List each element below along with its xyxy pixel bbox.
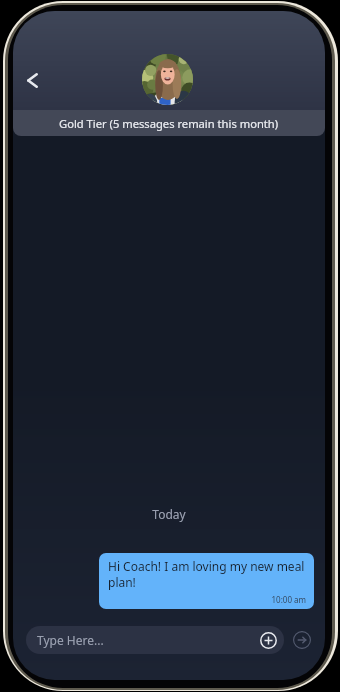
staticText: Type Here... <box>37 632 104 648</box>
staticText: Today <box>13 506 325 522</box>
staticText: Gold Tier (5 messages remain this month) <box>59 116 279 131</box>
button[interactable]: Gold Tier (5 messages remain this month) <box>13 110 325 136</box>
button[interactable]: Back <box>13 61 51 99</box>
button[interactable]: Coach profile photo <box>142 54 193 105</box>
staticText: Hi Coach! I am loving my new meal plan! <box>108 558 305 590</box>
button[interactable]: Add attachment <box>260 632 277 649</box>
button[interactable]: Send <box>293 631 311 649</box>
button[interactable]: Type Here... <box>26 626 284 654</box>
button[interactable]: Hi Coach! I am loving my new meal plan! <box>99 553 314 609</box>
staticText: 10:00 am <box>271 594 306 605</box>
